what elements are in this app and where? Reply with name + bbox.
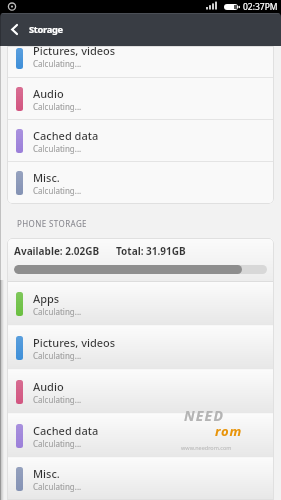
staticText: Calculating...: [33, 350, 82, 361]
button[interactable]: Pictures, videos: [7, 326, 274, 369]
staticText: Misc.: [33, 170, 60, 185]
staticText: Cached data: [33, 423, 99, 438]
staticText: Calculating...: [33, 481, 82, 492]
staticText: rom: [215, 422, 242, 440]
staticText: Calculating...: [33, 58, 82, 69]
staticText: Available: 2.02GB: [14, 244, 100, 258]
button[interactable]: Cached data: [7, 120, 274, 161]
button[interactable]: Storage: [0, 13, 281, 46]
staticText: Pictures, videos: [33, 335, 116, 350]
staticText: Calculating...: [33, 438, 82, 449]
button[interactable]: Cached data: [7, 414, 274, 457]
staticText: PHONE STORAGE: [17, 218, 87, 229]
staticText: www.needrom.com: [181, 444, 232, 451]
staticText: Calculating...: [33, 394, 82, 405]
button[interactable]: Available: 2.02GB: [7, 238, 274, 281]
staticText: Calculating...: [33, 101, 82, 112]
staticText: Calculating...: [33, 185, 82, 196]
staticText: 02:37PM: [243, 1, 278, 13]
staticText: Pictures, videos: [33, 46, 116, 58]
button[interactable]: Misc.: [7, 458, 274, 500]
staticText: Calculating...: [33, 143, 82, 154]
staticText: Storage: [29, 23, 63, 36]
staticText: Audio: [33, 379, 64, 394]
staticText: Misc.: [33, 466, 60, 481]
staticText: Apps: [33, 291, 60, 306]
staticText: Calculating...: [33, 306, 82, 317]
button[interactable]: Audio: [7, 78, 274, 119]
staticText: Cached data: [33, 128, 99, 143]
button[interactable]: Pictures, videos: [7, 46, 274, 77]
staticText: Total: 31.91GB: [116, 244, 186, 258]
button[interactable]: Apps: [7, 282, 274, 325]
button[interactable]: Misc.: [7, 162, 274, 203]
staticText: Audio: [33, 86, 64, 101]
staticText: NEED: [184, 406, 225, 425]
button[interactable]: Audio: [7, 370, 274, 413]
